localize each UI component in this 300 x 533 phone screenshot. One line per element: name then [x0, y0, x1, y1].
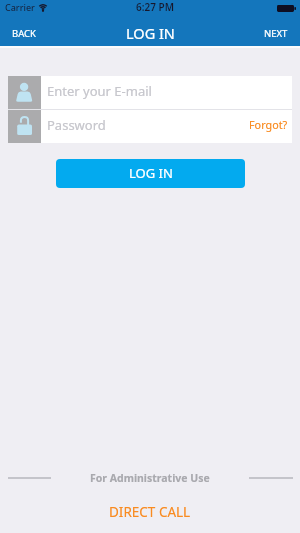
staticText: Enter your E-mail [47, 82, 152, 100]
button[interactable]: LOG IN [56, 159, 245, 188]
button[interactable]: DIRECT CALL [99, 500, 201, 524]
other: E-mail [8, 76, 41, 109]
staticText: Forgot? [249, 117, 288, 132]
staticText: BACK [12, 27, 36, 40]
button[interactable]: NEXT [252, 21, 300, 46]
staticText: Carrier [5, 1, 35, 13]
staticText: Password [47, 116, 106, 134]
button[interactable]: BACK [0, 21, 48, 46]
button[interactable]: E-mail [8, 76, 292, 109]
staticText: NEXT [264, 27, 288, 40]
button[interactable]: Password [8, 110, 242, 143]
staticText: For Administrative Use [90, 471, 210, 485]
staticText: LOG IN [129, 164, 173, 182]
button[interactable]: Forgot? [242, 110, 292, 143]
staticText: 6:27 PM [136, 0, 174, 14]
staticText: LOG IN [126, 23, 175, 43]
staticText: DIRECT CALL [109, 503, 191, 521]
other: Password [8, 110, 41, 143]
